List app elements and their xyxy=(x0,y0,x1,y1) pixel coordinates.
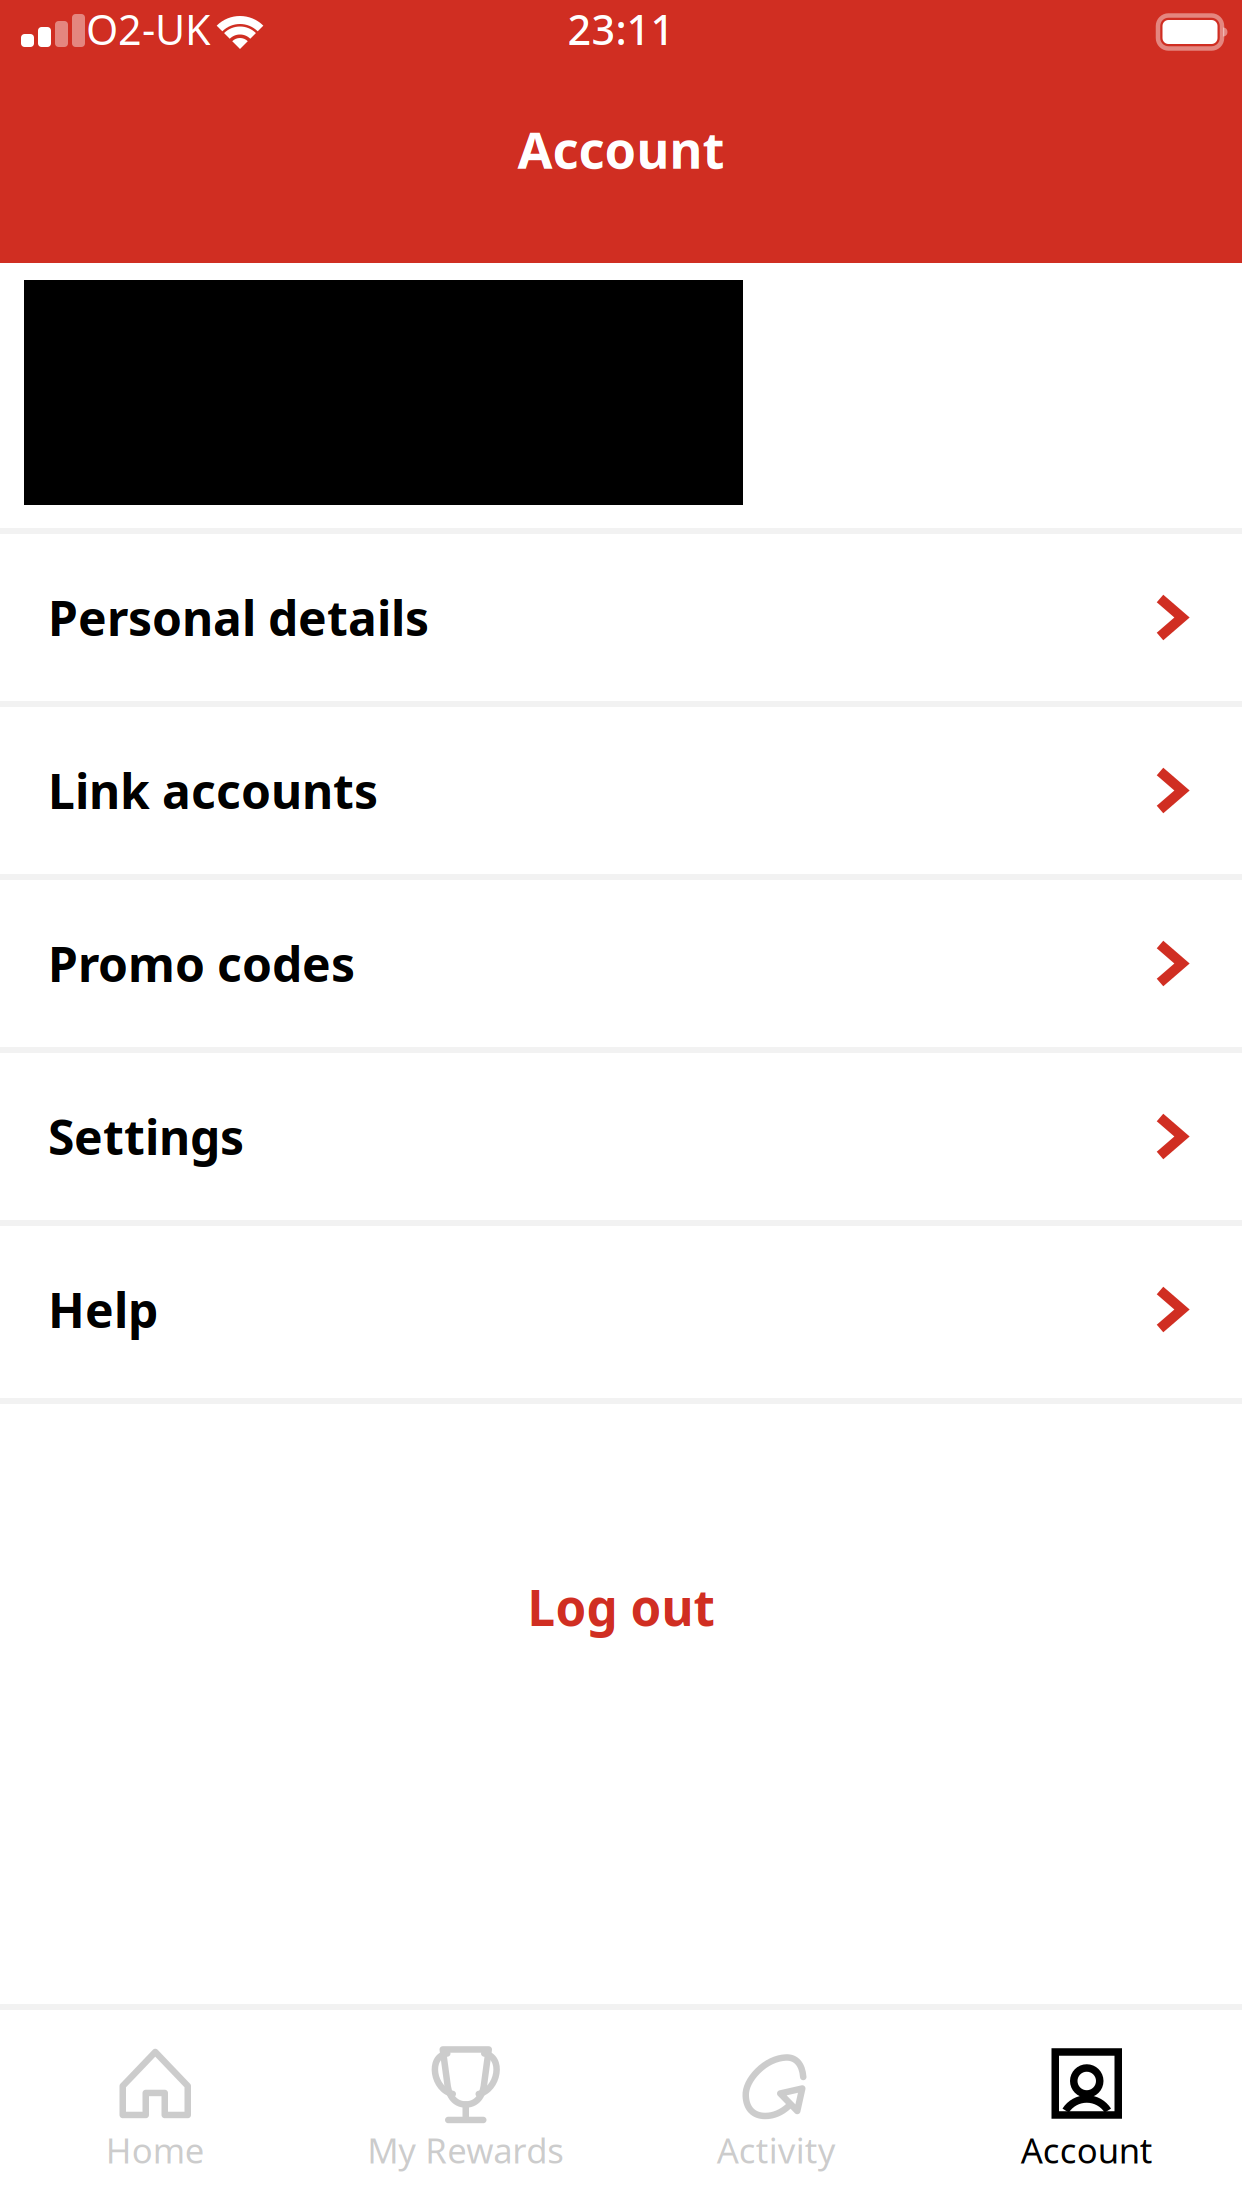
staticText: Personal details xyxy=(48,586,429,649)
staticText: My Rewards xyxy=(367,2127,564,2173)
button[interactable]: My Rewards xyxy=(310,2010,621,2205)
staticText: O2-UK xyxy=(86,2,211,56)
button[interactable]: Home xyxy=(0,2010,310,2205)
staticText: Home xyxy=(106,2127,205,2173)
button[interactable]: Log out xyxy=(457,1544,784,1669)
button[interactable]: Account xyxy=(931,2010,1242,2205)
staticText: Promo codes xyxy=(48,932,355,995)
button[interactable]: Personal details xyxy=(0,534,1242,701)
button[interactable]: Link accounts xyxy=(0,707,1242,874)
staticText: Account xyxy=(1021,2127,1153,2173)
staticText: Activity xyxy=(717,2127,836,2173)
staticText: Account xyxy=(517,115,724,183)
staticText: Link accounts xyxy=(48,759,378,822)
staticText: 23:11 xyxy=(567,2,674,56)
button[interactable]: Settings xyxy=(0,1053,1242,1220)
button[interactable]: Help xyxy=(0,1226,1242,1393)
staticText: Log out xyxy=(527,1574,714,1639)
button[interactable]: Activity xyxy=(621,2010,931,2205)
button[interactable]: Promo codes xyxy=(0,880,1242,1047)
staticText: Settings xyxy=(48,1105,244,1168)
staticText: Help xyxy=(48,1278,158,1341)
